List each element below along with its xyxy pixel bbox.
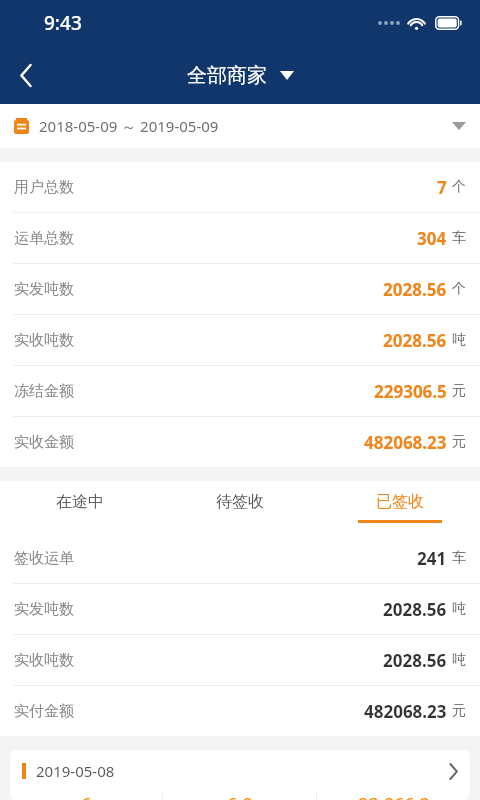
staticText: 待签收 (216, 492, 264, 512)
staticText: 实付金额 (14, 702, 74, 721)
button[interactable]: 冻结金额 (0, 366, 480, 416)
staticText: 吨 (452, 600, 466, 618)
button[interactable]: 实收金额 (0, 417, 480, 467)
button[interactable]: 运单总数 (0, 213, 480, 263)
button[interactable]: 在途中 (0, 481, 160, 533)
button[interactable]: 实收吨数 (0, 315, 480, 365)
staticText: 2028.56 (383, 598, 447, 621)
staticText: 在途中 (56, 492, 104, 512)
staticText: 2028.56 (383, 649, 447, 672)
staticText: 吨 (452, 331, 466, 349)
staticText: 6.9 (227, 792, 253, 800)
staticText: 482068.23 (364, 431, 447, 454)
staticText: 签收运单 (14, 549, 74, 568)
staticText: 吨 (452, 651, 466, 669)
staticText: 304 (417, 227, 447, 250)
staticText: 23,866.2 (358, 792, 430, 800)
button[interactable]: 2019-05-08 (10, 750, 470, 800)
button[interactable]: 实发吨数 (0, 264, 480, 314)
staticText: 已签收 (376, 492, 424, 512)
button[interactable]: 签收运单 (0, 533, 480, 583)
staticText: 241 (417, 547, 447, 570)
button[interactable]: Back (0, 49, 52, 101)
staticText: 482068.23 (364, 700, 447, 723)
staticText: 7 (437, 176, 447, 199)
staticText: 元 (452, 702, 466, 720)
button[interactable]: 已签收 (320, 481, 480, 533)
staticText: 229306.5 (374, 380, 447, 403)
staticText: 2028.56 (383, 278, 447, 301)
staticText: 实发吨数 (14, 280, 74, 299)
button[interactable]: 用户总数 (0, 162, 480, 212)
staticText: 用户总数 (14, 178, 74, 197)
button[interactable]: 全部商家 (187, 63, 294, 88)
staticText: 个 (452, 280, 466, 298)
staticText: 个 (452, 178, 466, 196)
staticText: 2028.56 (383, 329, 447, 352)
staticText: 实收吨数 (14, 331, 74, 350)
staticText: 元 (452, 433, 466, 451)
staticText: 实发吨数 (14, 600, 74, 619)
staticText: 6 (81, 792, 92, 800)
button[interactable]: 实发吨数 (0, 584, 480, 634)
staticText: 实收吨数 (14, 651, 74, 670)
staticText: 9:43 (44, 10, 82, 36)
button[interactable]: 实付金额 (0, 686, 480, 736)
button[interactable]: 待签收 (160, 481, 320, 533)
staticText: 2018-05-09 ～ 2019-05-09 (39, 116, 219, 136)
button[interactable]: 2018-05-09 ～ 2019-05-09 (0, 104, 480, 148)
staticText: 2019-05-08 (36, 761, 115, 781)
staticText: 元 (452, 382, 466, 400)
staticText: 全部商家 (187, 63, 267, 88)
staticText: 车 (452, 229, 466, 247)
staticText: 冻结金额 (14, 382, 74, 401)
button[interactable]: 实收吨数 (0, 635, 480, 685)
staticText: 实收金额 (14, 433, 74, 452)
staticText: 运单总数 (14, 229, 74, 248)
staticText: 车 (452, 549, 466, 567)
